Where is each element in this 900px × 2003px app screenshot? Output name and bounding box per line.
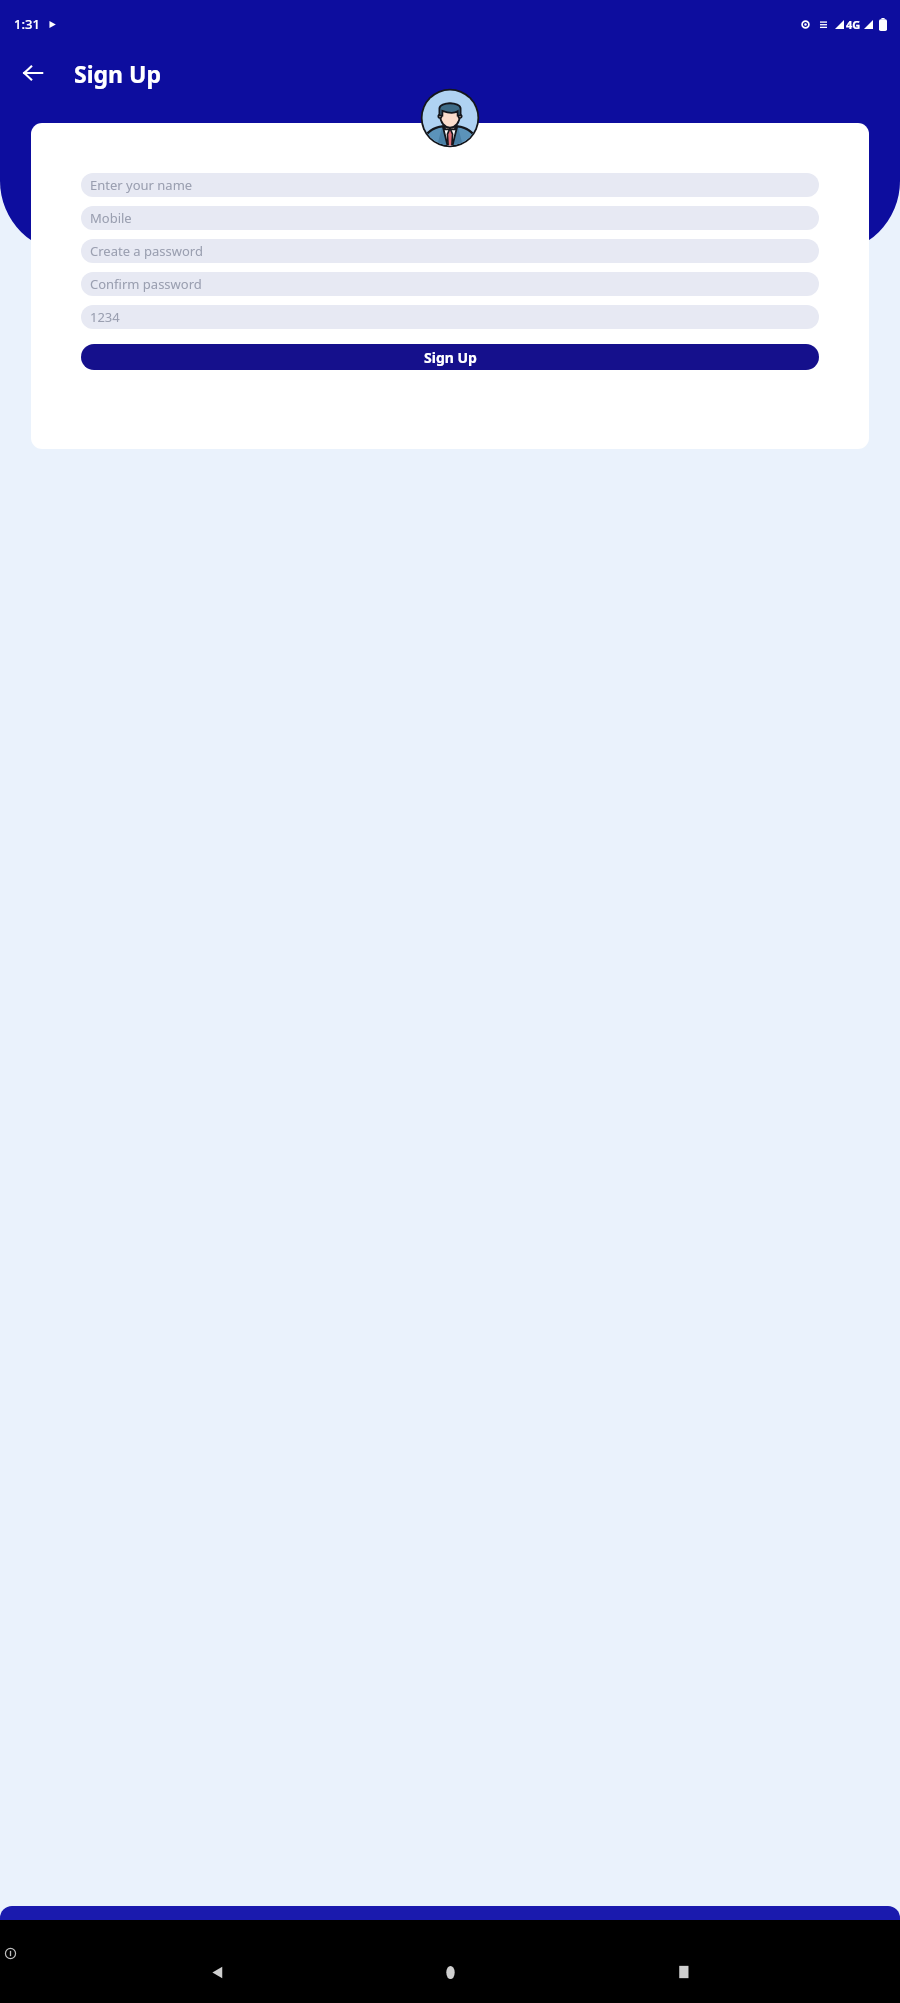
- staticText: 1234: [90, 308, 120, 326]
- button[interactable]: Back: [200, 1955, 234, 1989]
- button[interactable]: Mobile: [81, 206, 819, 230]
- button[interactable]: Recent apps: [667, 1955, 701, 1989]
- staticText: 4G: [846, 17, 861, 32]
- button[interactable]: Sign Up: [81, 344, 819, 370]
- button[interactable]: Home: [433, 1955, 467, 1989]
- staticText: Mobile: [90, 209, 132, 227]
- staticText: 1:31: [14, 15, 40, 33]
- button[interactable]: Enter your name: [81, 173, 819, 197]
- staticText: Enter your name: [90, 176, 193, 194]
- staticText: Confirm password: [90, 275, 202, 293]
- staticText: Sign Up: [424, 348, 477, 367]
- staticText: Create a password: [90, 242, 203, 260]
- button[interactable]: Back: [12, 52, 54, 94]
- button[interactable]: Create a password: [81, 239, 819, 263]
- button[interactable]: 1234: [81, 305, 819, 329]
- staticText: Sign Up: [74, 58, 161, 89]
- button[interactable]: Confirm password: [81, 272, 819, 296]
